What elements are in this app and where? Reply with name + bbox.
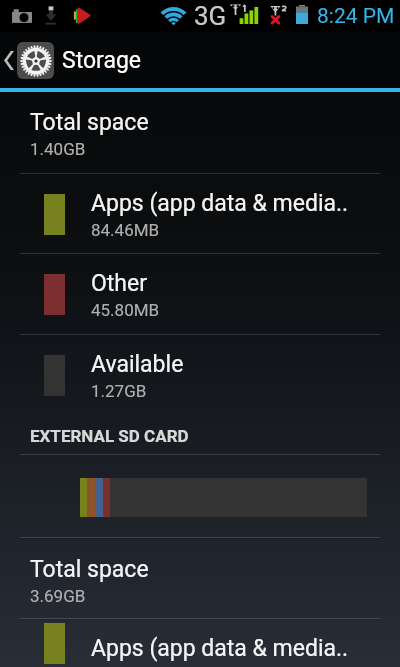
button[interactable]: Other xyxy=(0,255,400,334)
staticText: Total space xyxy=(30,556,149,583)
button[interactable]: Apps (app data & media.. xyxy=(0,175,400,253)
staticText: 1.27GB xyxy=(91,381,147,401)
staticText: Other xyxy=(91,270,148,297)
button[interactable]: Available xyxy=(0,336,400,415)
staticText: 8:24 PM xyxy=(317,4,395,29)
staticText: 1.40GB xyxy=(30,139,86,159)
staticText: Total space xyxy=(30,109,149,136)
staticText: 3.69GB xyxy=(30,586,86,606)
staticText: EXTERNAL SD CARD xyxy=(30,426,189,446)
button[interactable]: Total space xyxy=(0,539,400,618)
button[interactable]: Navigate up xyxy=(0,32,142,88)
staticText: 84.46MB xyxy=(91,220,160,240)
staticText: 3G xyxy=(194,1,227,31)
button[interactable]: Total space xyxy=(0,92,400,173)
staticText: Apps (app data & media.. xyxy=(91,190,349,217)
staticText: Available xyxy=(91,351,184,378)
button[interactable]: Apps (app data & media.. xyxy=(0,620,400,667)
staticText: Storage xyxy=(62,47,142,74)
staticText: 45.80MB xyxy=(91,300,160,320)
staticText: Apps (app data & media.. xyxy=(91,635,349,662)
